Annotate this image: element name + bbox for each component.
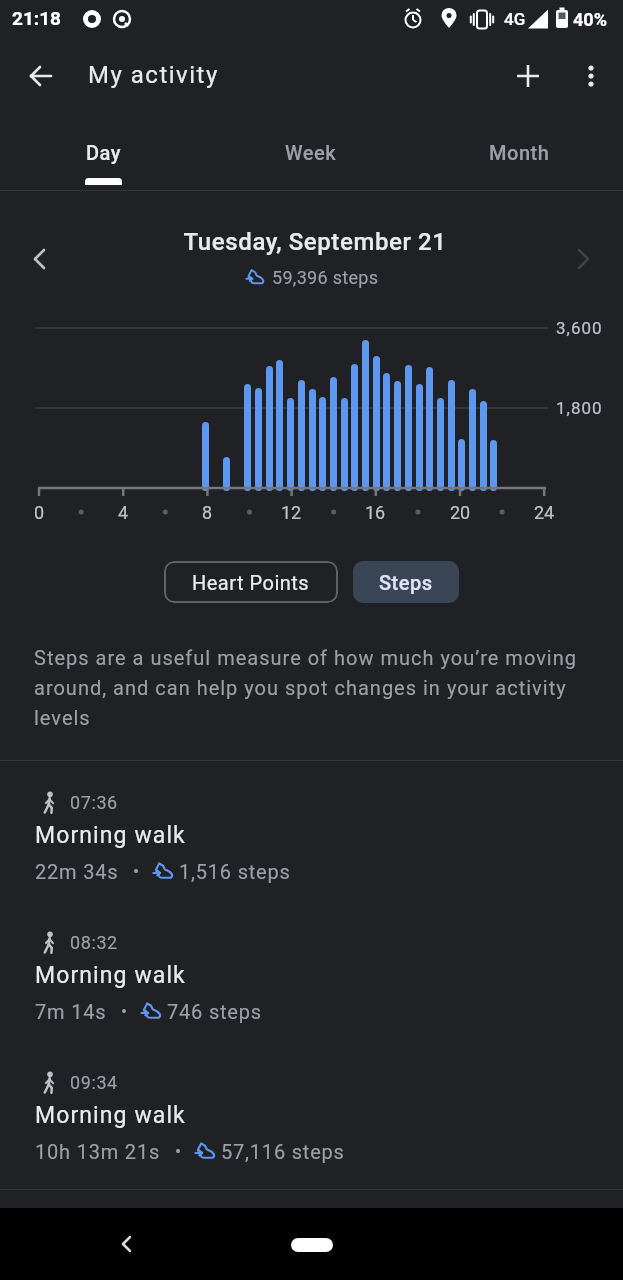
staticText: Tuesday, September 21 (115, 228, 515, 256)
button[interactable] (16, 234, 66, 284)
staticText: 7m 14s (35, 1000, 107, 1023)
staticText: 746 steps (167, 1000, 262, 1023)
button[interactable]: Steps (353, 561, 459, 603)
staticText: • (121, 1001, 128, 1022)
button[interactable]: Week (207, 115, 415, 190)
button[interactable]: 09:34 (0, 1070, 623, 1180)
staticText: Steps (379, 571, 433, 594)
staticText: Morning walk (35, 1102, 335, 1129)
button[interactable] (567, 52, 615, 100)
staticText: 40% (573, 9, 623, 30)
staticText: 20 (440, 502, 480, 523)
button[interactable] (557, 234, 607, 284)
button[interactable]: 07:36 (0, 790, 623, 900)
button[interactable] (17, 52, 65, 100)
staticText: 8 (187, 502, 227, 523)
staticText: Morning walk (35, 822, 335, 849)
staticText: 10h 13m 21s (35, 1140, 161, 1163)
button[interactable]: 08:32 (0, 930, 623, 1040)
staticText: Day (86, 141, 121, 164)
staticText: 07:36 (70, 792, 190, 813)
button[interactable] (504, 52, 552, 100)
button[interactable]: Heart Points (164, 561, 338, 603)
staticText: • (133, 861, 140, 882)
staticText: Morning walk (35, 962, 335, 989)
staticText: 16 (355, 502, 395, 523)
staticText: 57,116 steps (221, 1140, 345, 1163)
button[interactable] (103, 1220, 151, 1268)
staticText: 12 (271, 502, 311, 523)
staticText: 09:34 (70, 1072, 190, 1093)
button[interactable] (291, 1238, 333, 1252)
staticText: 08:32 (70, 932, 190, 953)
staticText: My activity (88, 61, 388, 89)
staticText: 21:18 (12, 7, 92, 29)
staticText: Steps are a useful measure of how much y… (34, 646, 577, 730)
staticText: 59,396 steps (272, 267, 379, 288)
staticText: 22m 34s (35, 860, 119, 883)
staticText: Week (285, 141, 337, 164)
staticText: 4G (504, 9, 534, 29)
staticText: 3,600 (556, 318, 616, 338)
staticText: • (175, 1141, 182, 1162)
staticText: 1,516 steps (179, 860, 291, 883)
staticText: Month (489, 141, 550, 164)
staticText: 24 (524, 502, 564, 523)
button[interactable]: Day (0, 115, 207, 190)
staticText: 0 (19, 502, 59, 523)
button[interactable]: Month (415, 115, 623, 190)
staticText: Heart Points (192, 571, 310, 594)
staticText: 1,800 (556, 398, 616, 418)
staticText: 4 (103, 502, 143, 523)
